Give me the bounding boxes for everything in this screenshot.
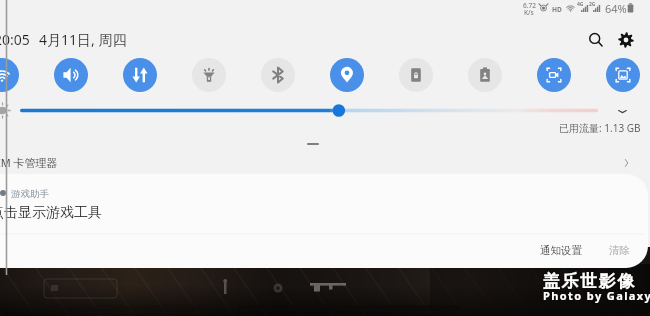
staticText: 2G bbox=[589, 1, 596, 8]
button[interactable]: Sound bbox=[54, 58, 88, 92]
staticText: 清除 bbox=[609, 244, 630, 257]
button[interactable]: Power saving bbox=[468, 58, 502, 92]
staticText: HD bbox=[552, 5, 562, 14]
button[interactable]: Screen recorder bbox=[537, 58, 571, 92]
button[interactable]: SIM 卡管理器 bbox=[0, 148, 650, 174]
staticText: 盖乐世影像 bbox=[542, 271, 635, 292]
staticText: SIM 卡管理器 bbox=[0, 155, 58, 170]
button[interactable]: 通知设置 bbox=[531, 238, 591, 262]
staticText: 6.72 bbox=[523, 1, 536, 10]
button[interactable]: Settings bbox=[613, 27, 639, 53]
button[interactable]: Auto rotate bbox=[399, 58, 433, 92]
button[interactable]: Brightness bbox=[20, 102, 598, 119]
staticText: K/s bbox=[524, 8, 534, 17]
button[interactable]: Screenshot bbox=[606, 58, 640, 92]
button[interactable]: Expand bbox=[610, 99, 634, 123]
button[interactable]: Wi-Fi bbox=[0, 58, 19, 92]
button[interactable]: 游戏助手 bbox=[0, 174, 650, 268]
button[interactable]: Mobile data bbox=[123, 58, 157, 92]
button[interactable]: 清除 bbox=[598, 238, 640, 262]
button[interactable]: Collapse panel bbox=[307, 143, 319, 145]
staticText: 通知设置 bbox=[540, 244, 582, 257]
staticText: 点击显示游戏工具 bbox=[0, 204, 102, 222]
button[interactable]: Bluetooth bbox=[261, 58, 295, 92]
staticText: 4G bbox=[577, 1, 584, 8]
staticText: 64% bbox=[605, 1, 627, 16]
button[interactable]: Location bbox=[330, 58, 364, 92]
staticText: 已用流量: 1.13 GB bbox=[559, 121, 641, 135]
button[interactable]: Flashlight bbox=[192, 58, 226, 92]
button[interactable]: Search bbox=[583, 27, 609, 53]
staticText: Photo by Galaxy bbox=[543, 288, 650, 303]
staticText: 4月11日, 周四 bbox=[39, 30, 127, 49]
staticText: 游戏助手 bbox=[11, 188, 49, 200]
staticText: 20:05 bbox=[0, 30, 30, 49]
